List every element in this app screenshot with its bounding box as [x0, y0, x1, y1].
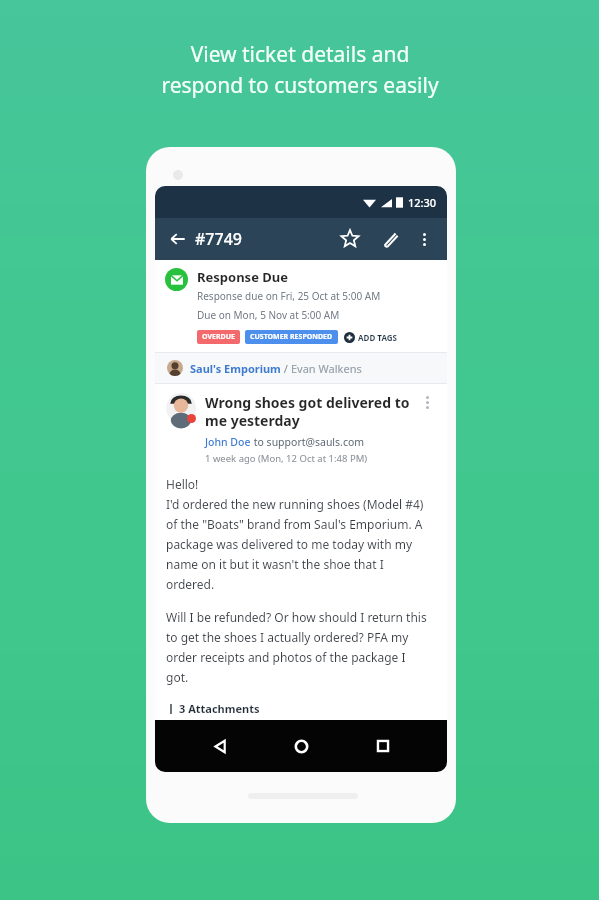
- button[interactable]: Edit: [375, 224, 405, 254]
- button[interactable]: Back: [165, 226, 191, 252]
- staticText: 1 week ago (Mon, 12 Oct at 1:48 PM): [205, 452, 368, 465]
- button[interactable]: ADD TAGS: [344, 332, 397, 343]
- staticText: View ticket details and respond to custo…: [161, 40, 439, 99]
- staticText: #7749: [195, 228, 242, 250]
- staticText: Wrong shoes got delivered to me yesterda…: [205, 393, 410, 430]
- staticText: Response Due: [197, 268, 289, 286]
- staticText: Will I be refunded? Or how should I retu…: [166, 609, 427, 685]
- button[interactable]: Recent apps: [366, 729, 400, 763]
- button[interactable]: Back: [203, 729, 237, 763]
- button[interactable]: Star: [335, 224, 365, 254]
- button[interactable]: Saul's Emporium: [155, 353, 447, 383]
- button[interactable]: Message options: [418, 393, 436, 411]
- staticText: ADD TAGS: [358, 332, 397, 343]
- staticText: to support@sauls.com: [251, 435, 365, 449]
- staticText: OVERDUE: [202, 332, 235, 342]
- button[interactable]: More options: [411, 226, 437, 252]
- staticText: John Doe: [205, 435, 251, 449]
- staticText: 3 Attachments: [179, 701, 260, 716]
- staticText: 12:30: [408, 195, 437, 210]
- staticText: /: [281, 361, 291, 376]
- staticText: Evan Walkens: [291, 361, 362, 376]
- staticText: Hello! I'd ordered the new running shoes…: [166, 476, 424, 592]
- staticText: CUSTOMER RESPONDED: [250, 332, 333, 342]
- button[interactable]: Home: [284, 729, 318, 763]
- staticText: Response due on Fri, 25 Oct at 5:00 AM: [197, 289, 381, 303]
- staticText: Saul's Emporium: [190, 361, 281, 376]
- button[interactable]: 3 Attachments: [166, 701, 260, 716]
- button[interactable]: CUSTOMER RESPONDED: [250, 332, 333, 342]
- staticText: Due on Mon, 5 Nov at 5:00 AM: [197, 308, 340, 322]
- button[interactable]: OVERDUE: [202, 332, 235, 342]
